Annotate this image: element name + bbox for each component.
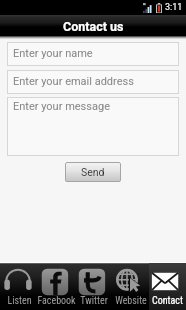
staticText: Enter your email address — [13, 75, 134, 88]
staticText: Facebook — [37, 295, 76, 307]
staticText: Twitter — [80, 295, 108, 307]
button[interactable]: Enter your message — [7, 97, 179, 156]
staticText: Send — [81, 166, 105, 178]
button[interactable]: Website — [112, 263, 149, 310]
staticText: Website — [115, 295, 147, 307]
staticText: Listen — [7, 295, 32, 307]
button[interactable]: Twitter — [75, 263, 112, 310]
staticText: 3:11 — [165, 2, 183, 13]
button[interactable]: Send — [65, 162, 121, 182]
staticText: Contact us — [63, 19, 124, 34]
button[interactable]: Facebook — [38, 263, 75, 310]
button[interactable]: Listen — [0, 263, 38, 310]
staticText: Contact — [152, 295, 183, 307]
staticText: Enter your name — [13, 47, 93, 60]
button[interactable]: Enter your email address — [7, 70, 179, 94]
button[interactable]: Enter your name — [7, 42, 179, 66]
button[interactable]: Contact — [149, 263, 186, 310]
staticText: Enter your message — [13, 100, 110, 113]
